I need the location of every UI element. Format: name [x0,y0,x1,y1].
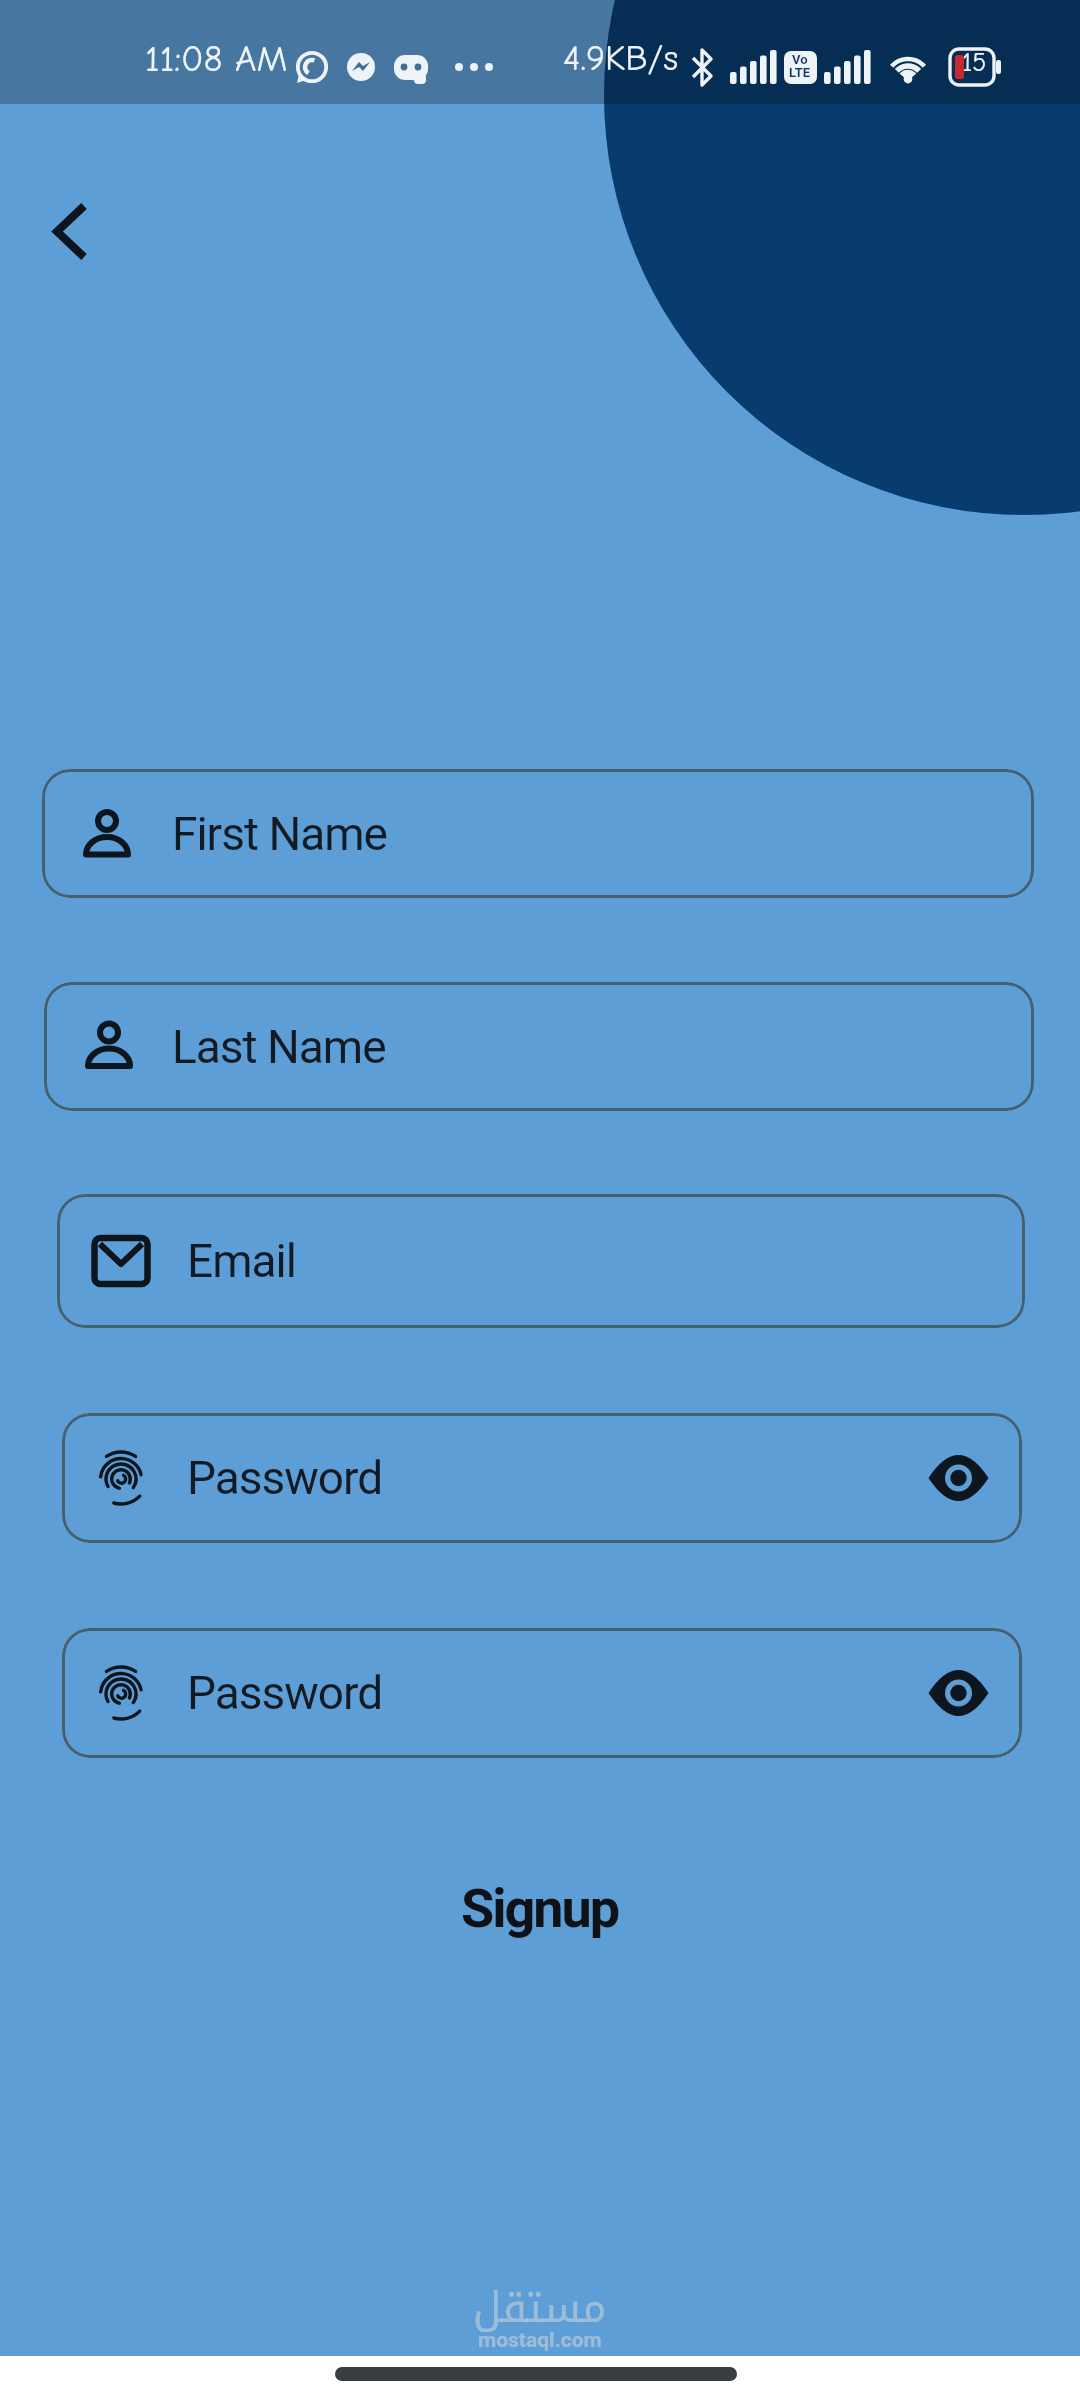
staticText: Signup [461,1877,619,1940]
staticText: LTE [789,65,811,80]
staticText: 11:08 AM [145,38,288,81]
staticText: mostaql.com [478,2328,602,2353]
staticText: Password [187,1666,383,1720]
button[interactable]: Last Name [44,982,1034,1111]
staticText: مستقل [473,2268,607,2348]
staticText: Last Name [172,1020,386,1074]
button[interactable]: Password [62,1628,1022,1758]
staticText: 4.9KB/s [563,38,679,79]
button[interactable]: Signup [0,1868,1080,1948]
staticText: Password [187,1451,383,1505]
staticText: First Name [172,807,387,861]
button[interactable]: Email [57,1194,1025,1328]
button[interactable] [30,180,130,280]
staticText: Vo [792,52,808,67]
button[interactable]: First Name [42,769,1034,898]
button[interactable]: Password [62,1413,1022,1543]
staticText: 15 [962,48,987,78]
staticText: Email [187,1234,296,1288]
